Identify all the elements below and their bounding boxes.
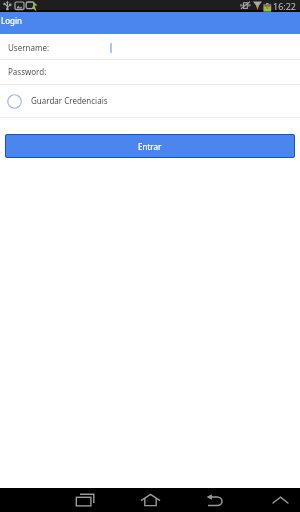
staticText: 16:22 bbox=[273, 0, 297, 12]
button[interactable]: Back bbox=[195, 488, 235, 512]
staticText: Username: bbox=[8, 42, 50, 53]
staticText: Password: bbox=[8, 66, 47, 77]
staticText: Guardar Credenciais bbox=[31, 95, 108, 106]
button[interactable]: Guardar Credenciais bbox=[0, 85, 300, 117]
button[interactable]: Show keyboard bbox=[262, 488, 300, 512]
button[interactable]: Entrar bbox=[5, 134, 295, 158]
button[interactable]: Password: bbox=[0, 60, 300, 84]
staticText: Login bbox=[1, 15, 22, 26]
button[interactable]: Home bbox=[130, 488, 170, 512]
button[interactable]: Username: bbox=[0, 34, 300, 59]
button[interactable]: Recent apps bbox=[65, 488, 105, 512]
staticText: Entrar bbox=[138, 141, 162, 152]
